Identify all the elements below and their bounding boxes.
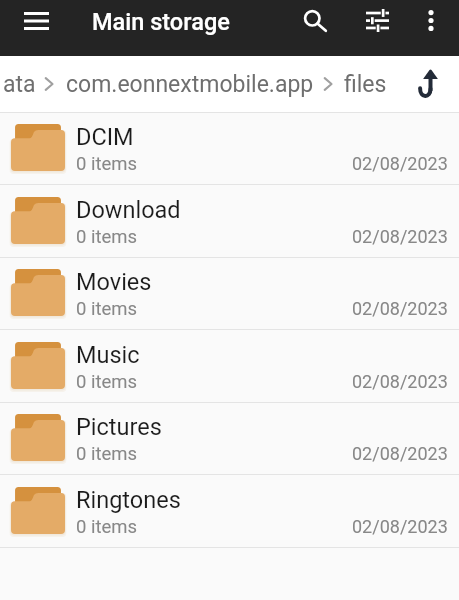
- staticText: 02/08/2023: [352, 371, 448, 392]
- button[interactable]: Go up one level: [398, 56, 458, 111]
- button[interactable]: Main storage: [92, 1, 230, 42]
- button[interactable]: Search: [289, 0, 342, 41]
- button[interactable]: Sort and view options: [350, 0, 405, 41]
- button[interactable]: DCIM: [0, 112, 459, 185]
- staticText: Pictures: [76, 413, 162, 441]
- staticText: 02/08/2023: [352, 443, 448, 464]
- staticText: Download: [76, 196, 181, 224]
- button[interactable]: Movies: [0, 257, 459, 330]
- staticText: 02/08/2023: [352, 153, 448, 174]
- staticText: com.eonnextmobile.app: [66, 71, 314, 98]
- staticText: ata: [3, 71, 36, 98]
- button[interactable]: Music: [0, 330, 459, 403]
- staticText: Music: [76, 341, 140, 369]
- button[interactable]: Open navigation drawer: [8, 0, 64, 41]
- staticText: Main storage: [92, 8, 230, 36]
- staticText: 0 items: [76, 371, 138, 393]
- staticText: 0 items: [76, 443, 138, 465]
- button[interactable]: Ringtones: [0, 475, 459, 548]
- button[interactable]: More options: [408, 0, 454, 41]
- staticText: 02/08/2023: [352, 298, 448, 319]
- staticText: 0 items: [76, 153, 138, 175]
- button[interactable]: Download: [0, 185, 459, 258]
- staticText: 02/08/2023: [352, 516, 448, 537]
- staticText: DCIM: [76, 123, 134, 151]
- staticText: Ringtones: [76, 486, 181, 514]
- staticText: 0 items: [76, 226, 138, 248]
- staticText: Movies: [76, 268, 152, 296]
- button[interactable]: Pictures: [0, 402, 459, 475]
- button[interactable]: files: [344, 56, 387, 112]
- staticText: 0 items: [76, 298, 138, 320]
- staticText: 0 items: [76, 516, 138, 538]
- button[interactable]: com.eonnextmobile.app: [66, 56, 314, 112]
- staticText: 02/08/2023: [352, 226, 448, 247]
- button[interactable]: ata: [3, 56, 36, 112]
- staticText: files: [344, 71, 387, 98]
